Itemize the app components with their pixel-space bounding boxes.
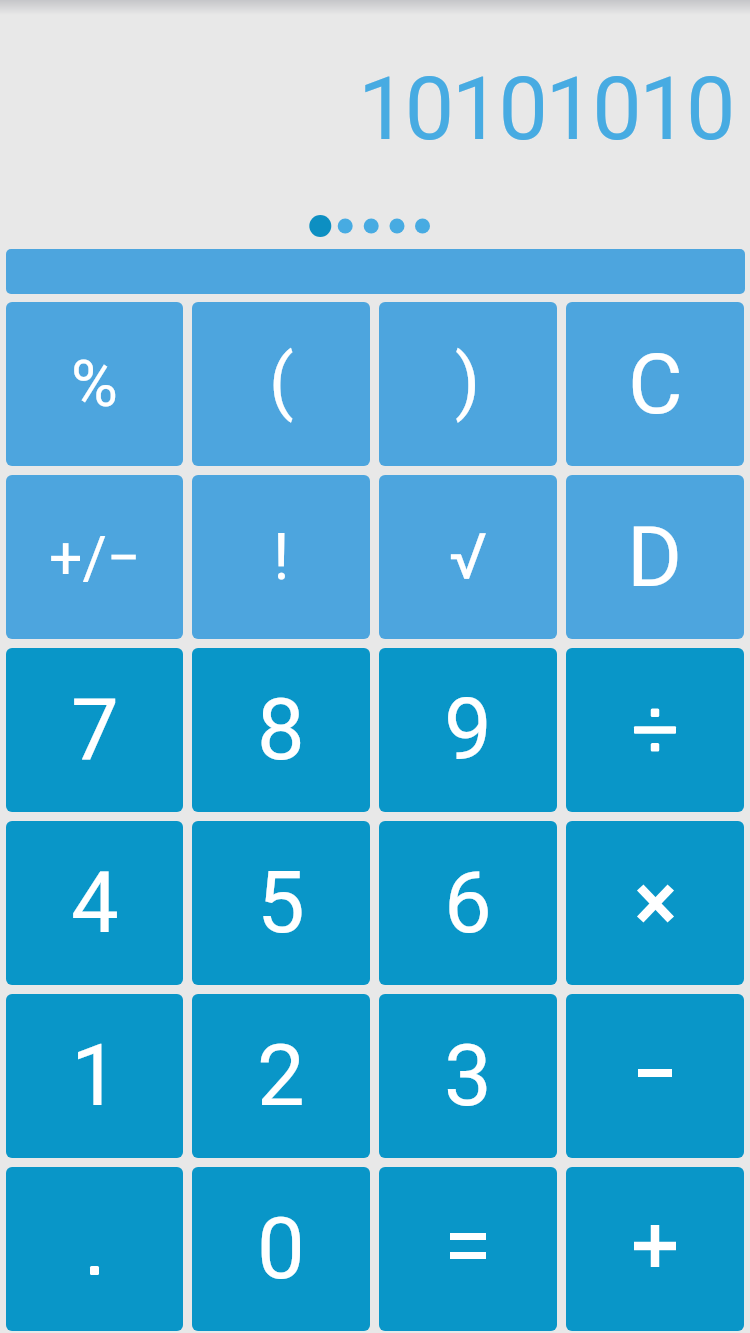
staticText: (	[269, 339, 294, 423]
button[interactable]	[566, 994, 744, 1158]
button[interactable]: 2	[192, 994, 370, 1158]
button[interactable]: C	[566, 302, 744, 466]
staticText: 7	[71, 680, 119, 780]
button[interactable]	[6, 249, 745, 294]
staticText: 10101010	[358, 57, 733, 147]
button[interactable]	[379, 1167, 557, 1331]
button[interactable]	[566, 1167, 744, 1331]
staticText: √	[449, 520, 488, 595]
button[interactable]: 7	[6, 648, 183, 812]
staticText: 6	[444, 853, 492, 953]
staticText: !	[273, 520, 290, 595]
button[interactable]: %	[6, 302, 183, 466]
staticText: +/−	[49, 523, 141, 592]
button[interactable]: 5	[192, 821, 370, 985]
button[interactable]: 6	[379, 821, 557, 985]
button[interactable]: 0	[192, 1167, 370, 1331]
staticText: 3	[444, 1026, 492, 1126]
staticText: )	[455, 339, 481, 423]
staticText: 0	[257, 1199, 305, 1299]
staticText: 9	[444, 680, 492, 780]
button[interactable]	[566, 648, 744, 812]
button[interactable]: 4	[6, 821, 183, 985]
button[interactable]: D	[566, 475, 744, 639]
button[interactable]: 9	[379, 648, 557, 812]
staticText: D	[627, 508, 683, 606]
button[interactable]: √	[379, 475, 557, 639]
button[interactable]	[6, 1167, 183, 1331]
staticText: 5	[257, 853, 305, 953]
staticText: 1	[71, 1026, 119, 1126]
staticText: C	[628, 335, 683, 433]
button[interactable]: (	[192, 302, 370, 466]
staticText: %	[71, 347, 118, 422]
button[interactable]: 1	[6, 994, 183, 1158]
staticText: 4	[71, 853, 119, 953]
button[interactable]: !	[192, 475, 370, 639]
button[interactable]	[566, 821, 744, 985]
button[interactable]: 8	[192, 648, 370, 812]
staticText: 2	[257, 1026, 305, 1126]
button[interactable]: )	[379, 302, 557, 466]
button[interactable]: 3	[379, 994, 557, 1158]
button[interactable]: +/−	[6, 475, 183, 639]
staticText: 8	[257, 680, 305, 780]
